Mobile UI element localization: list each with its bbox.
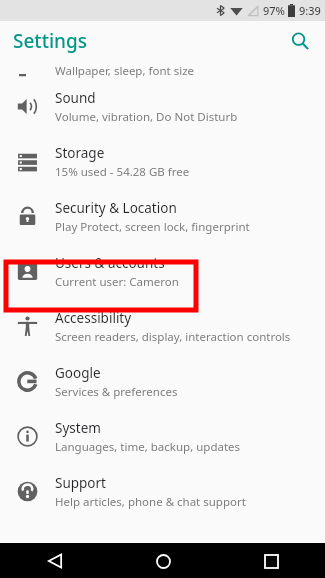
button[interactable]: Search	[283, 24, 317, 58]
button[interactable]: Back	[38, 544, 72, 578]
staticText: System	[55, 419, 101, 437]
staticText: Help articles, phone & chat support	[55, 494, 246, 510]
staticText: Services & preferences	[55, 384, 178, 400]
button[interactable]: Support	[0, 464, 325, 519]
staticText: 15% used - 54.28 GB free	[55, 164, 190, 180]
button[interactable]: Security & Location	[0, 189, 325, 244]
staticText: 97%	[263, 3, 285, 18]
staticText: 9:39	[299, 3, 321, 18]
staticText: Security & Location	[55, 199, 177, 217]
staticText: Sound	[55, 89, 96, 107]
staticText: Accessibility	[55, 309, 132, 327]
staticText: Settings	[13, 28, 87, 54]
staticText: Screen readers, display, interaction con…	[55, 329, 291, 345]
button[interactable]: Google	[0, 354, 325, 409]
staticText: Support	[55, 474, 106, 492]
button[interactable]: Accessibility	[0, 299, 325, 354]
button[interactable]: Users & accounts	[0, 244, 325, 299]
staticText: Storage	[55, 144, 105, 162]
staticText: Play Protect, screen lock, fingerprint	[55, 219, 250, 235]
button[interactable]: System	[0, 409, 325, 464]
button[interactable]: Wallpaper, sleep, font size	[0, 61, 325, 79]
button[interactable]: Home	[146, 544, 180, 578]
staticText: Languages, time, backup, updates	[55, 439, 241, 455]
staticText: Volume, vibration, Do Not Disturb	[55, 109, 238, 125]
button[interactable]: Storage	[0, 134, 325, 189]
staticText: Users & accounts	[55, 254, 165, 272]
button[interactable]: Recent apps	[254, 544, 288, 578]
staticText: Google	[55, 364, 101, 382]
staticText: Current user: Cameron	[55, 274, 179, 290]
staticText: Wallpaper, sleep, font size	[55, 63, 195, 79]
button[interactable]: Sound	[0, 79, 325, 134]
